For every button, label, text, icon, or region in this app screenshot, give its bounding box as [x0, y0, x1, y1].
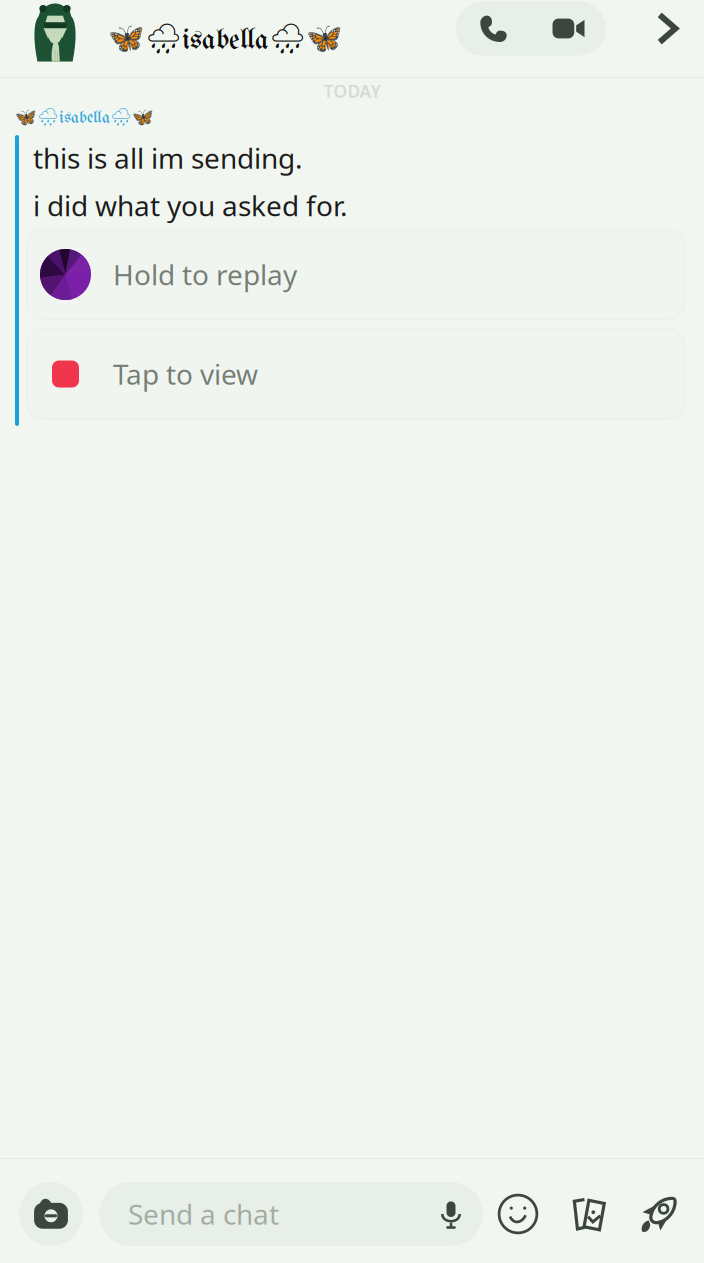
button[interactable]: More options — [615, 11, 704, 65]
button[interactable]: Audio call — [456, 1, 531, 55]
staticText: Tap to view — [113, 355, 258, 393]
staticText: i did what you asked for. — [33, 187, 348, 224]
button[interactable]: Cameos — [553, 1182, 623, 1246]
button[interactable]: Profile — [0, 3, 110, 73]
button[interactable]: Video call — [531, 1, 606, 55]
staticText: Hold to replay — [113, 256, 297, 293]
staticText: 🦋🌧isabella🌧🦋 — [108, 21, 343, 56]
staticText: Send a chat — [128, 1195, 279, 1233]
staticText: this is all im sending. — [33, 139, 303, 177]
button[interactable]: Hold to replay — [27, 230, 684, 319]
button[interactable]: Games and mini apps — [623, 1182, 695, 1246]
staticText: 🦋🌧isabella🌧🦋 — [15, 107, 154, 127]
button[interactable]: Stickers — [483, 1182, 553, 1246]
button[interactable]: Send a chat — [99, 1182, 483, 1246]
staticText: TODAY — [323, 79, 380, 102]
button[interactable]: Open camera — [9, 1182, 99, 1246]
button[interactable]: Tap to view — [27, 329, 684, 419]
